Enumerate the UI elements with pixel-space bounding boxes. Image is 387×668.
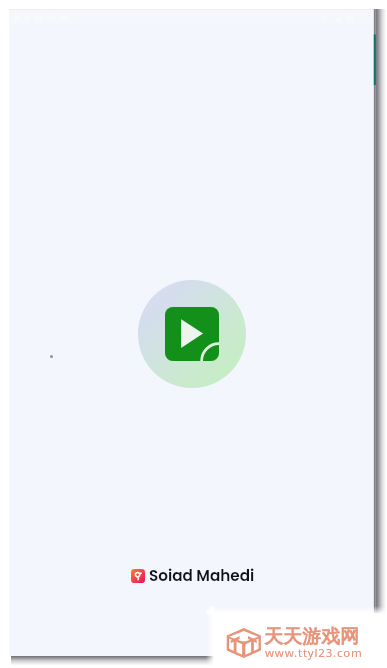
staticText: 天天游戏网 [264,625,359,649]
staticText: Soiad Mahedi [149,565,255,586]
button[interactable]: Soiad Mahedi [131,565,255,586]
staticText: www.ttyl23.com [265,645,363,661]
